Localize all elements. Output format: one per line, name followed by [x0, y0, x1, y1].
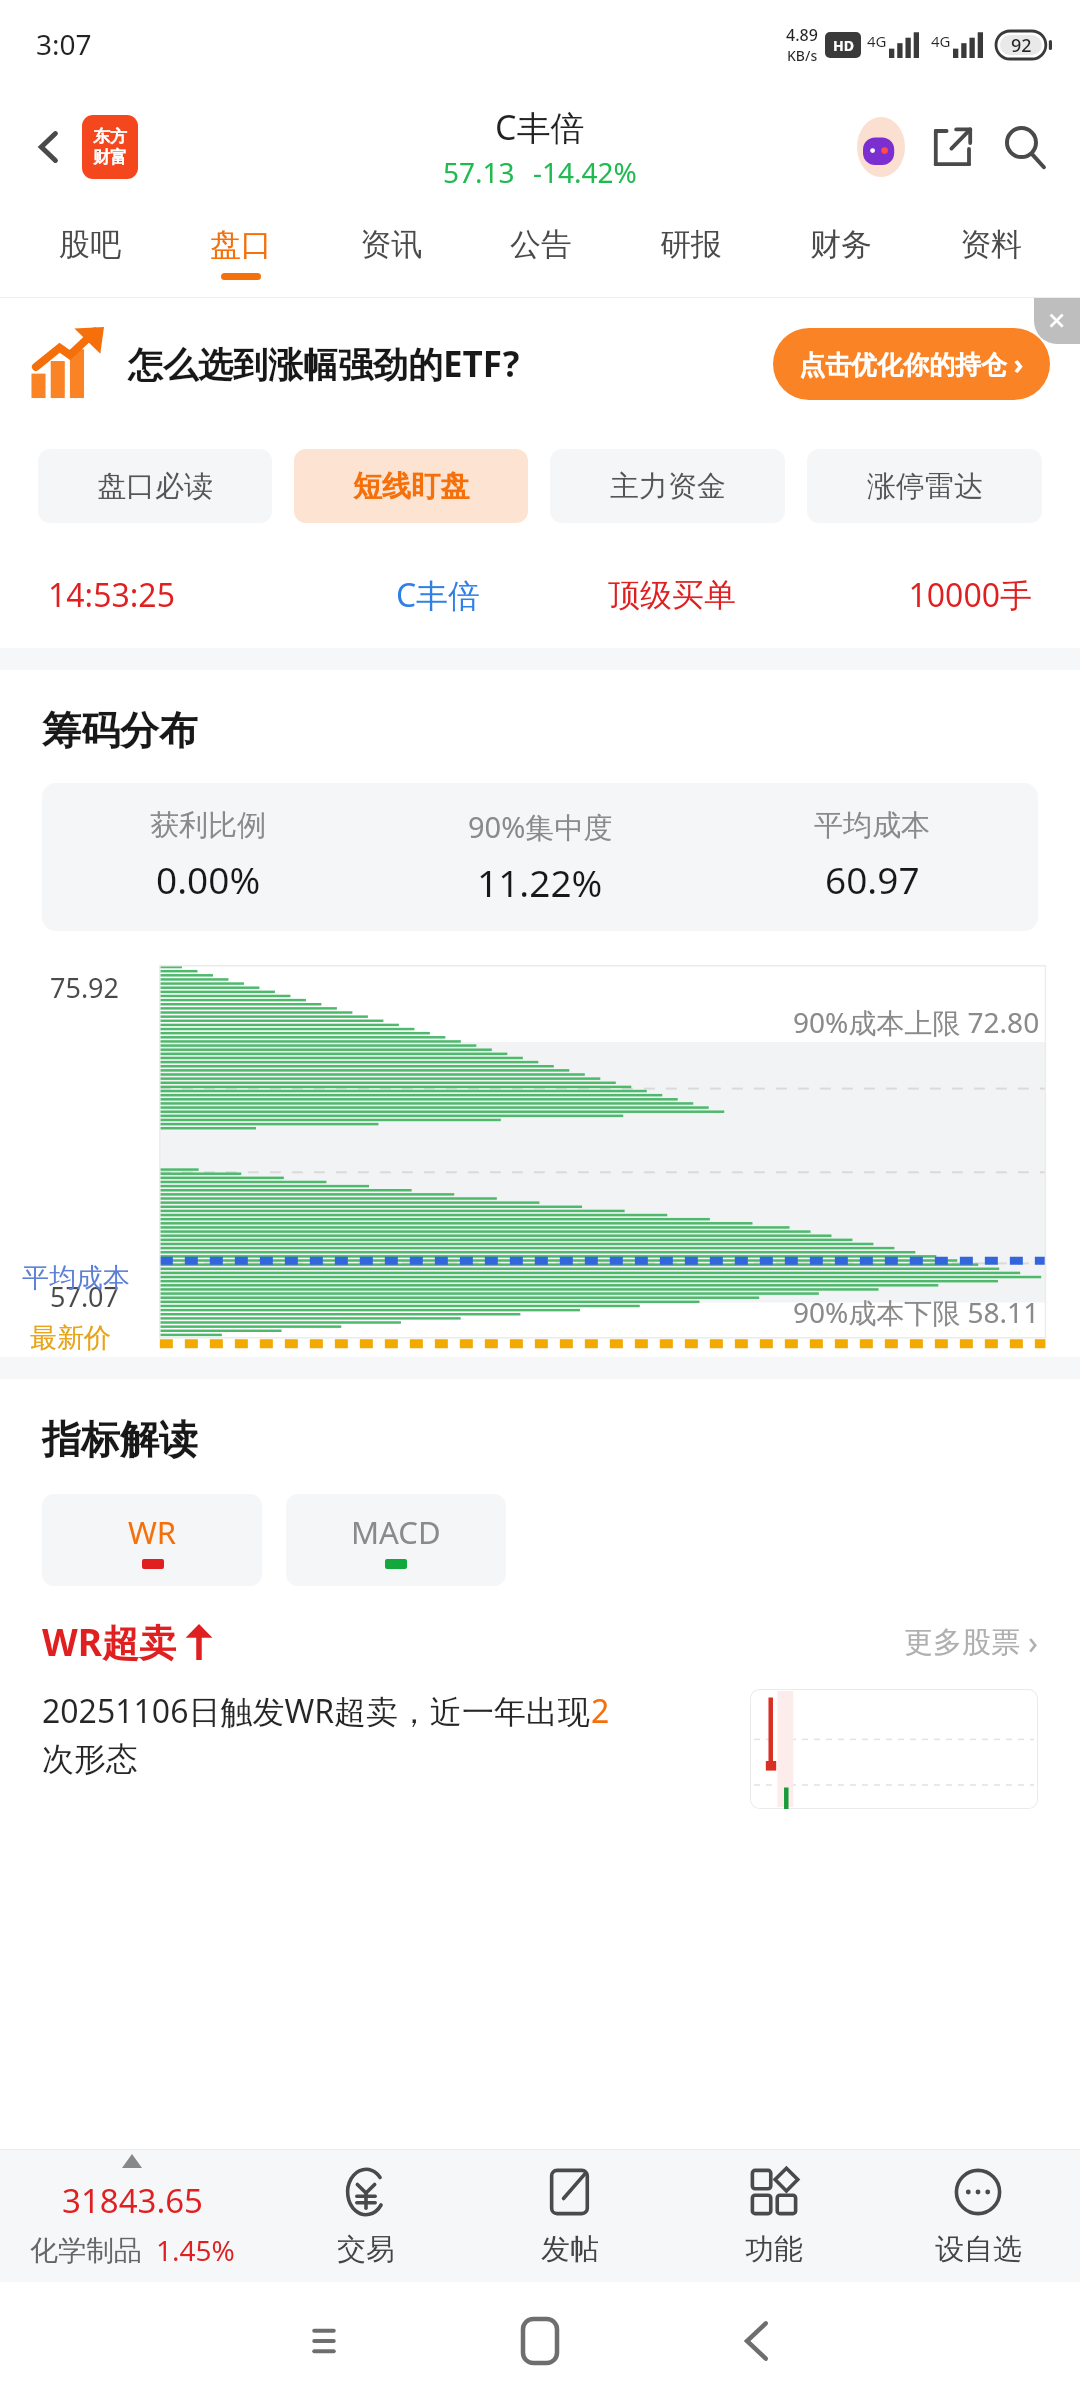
- staticText: 4.89: [786, 24, 818, 46]
- button[interactable]: 盘口必读: [38, 449, 272, 523]
- staticText: 资料: [960, 225, 1022, 264]
- staticText: 功能: [745, 2231, 803, 2268]
- staticText: C丰倍: [495, 104, 585, 150]
- staticText: 57.07: [50, 1278, 120, 1315]
- staticText: 11.22%: [477, 857, 603, 907]
- button[interactable]: 主力资金: [550, 449, 785, 523]
- button[interactable]: 东方: [82, 115, 138, 179]
- staticText: 最新价: [30, 1321, 111, 1355]
- staticText: 盘口必读: [97, 468, 213, 505]
- staticText: -14.42%: [533, 153, 637, 191]
- button[interactable]: 功能: [672, 2150, 876, 2282]
- button[interactable]: 资讯: [316, 206, 466, 298]
- staticText: 化学制品: [30, 2233, 142, 2268]
- staticText: 20251106日触发WR超卖，近一年出现: [42, 1689, 591, 1733]
- button[interactable]: 盘口: [165, 206, 316, 298]
- button[interactable]: 分享: [920, 114, 986, 180]
- staticText: 57.13: [443, 153, 515, 191]
- staticText: 92: [1011, 33, 1032, 58]
- staticText: 点击优化你的持仓 ›: [799, 346, 1024, 382]
- button[interactable]: 31843.65: [0, 2150, 264, 2282]
- staticText: 筹码分布: [42, 706, 198, 755]
- button[interactable]: 点击优化你的持仓 ›: [773, 328, 1050, 400]
- staticText: 研报: [660, 225, 722, 264]
- staticText: 3:07: [36, 25, 92, 63]
- button[interactable]: 返回: [18, 116, 80, 178]
- button[interactable]: 怎么选到涨幅强劲的ETF?: [30, 298, 1050, 430]
- staticText: 10000手: [792, 573, 1032, 617]
- staticText: 指标解读: [42, 1415, 198, 1464]
- button[interactable]: 搜索: [992, 114, 1058, 180]
- staticText: 1.45%: [156, 2231, 235, 2269]
- staticText: 发帖: [541, 2231, 599, 2268]
- button[interactable]: 资料: [916, 206, 1066, 298]
- button[interactable]: 设自选: [876, 2150, 1080, 2282]
- staticText: 获利比例: [150, 807, 266, 844]
- staticText: 2: [591, 1689, 610, 1733]
- staticText: ›: [1028, 1620, 1038, 1664]
- button[interactable]: 14:53:25: [48, 542, 1032, 648]
- staticText: 90%成本下限 58.11: [793, 1293, 1040, 1331]
- staticText: ✕: [1047, 308, 1067, 335]
- staticText: 盘口: [210, 225, 272, 264]
- staticText: 31843.65: [62, 2178, 203, 2223]
- button[interactable]: 财务: [766, 206, 916, 298]
- staticText: 60.97: [825, 854, 920, 904]
- button[interactable]: 发帖: [468, 2150, 672, 2282]
- staticText: 东方: [93, 126, 127, 147]
- staticText: 公告: [510, 225, 572, 264]
- staticText: 90%成本上限 72.80: [793, 1003, 1040, 1041]
- staticText: 怎么选到涨幅强劲的ETF?: [128, 340, 520, 388]
- staticText: C丰倍: [324, 573, 552, 617]
- button[interactable]: 返回: [648, 2282, 864, 2400]
- button[interactable]: 交易: [264, 2150, 468, 2282]
- staticText: 财富: [93, 147, 127, 168]
- staticText: 4G: [931, 31, 951, 51]
- button[interactable]: 公告: [466, 206, 616, 298]
- staticText: 90%集中度: [468, 807, 613, 847]
- staticText: MACD: [351, 1511, 441, 1553]
- button[interactable]: 主屏幕: [432, 2282, 648, 2400]
- button[interactable]: 关闭广告: [1034, 298, 1080, 344]
- button[interactable]: 股吧: [14, 206, 165, 298]
- button[interactable]: 涨停雷达: [807, 449, 1042, 523]
- staticText: 短线盯盘: [353, 468, 469, 505]
- button[interactable]: 短线盯盘: [294, 449, 528, 523]
- staticText: 4G: [867, 31, 887, 51]
- staticText: 主力资金: [610, 468, 726, 505]
- staticText: 涨停雷达: [867, 468, 983, 505]
- staticText: 资讯: [360, 225, 422, 264]
- button[interactable]: WR: [42, 1494, 262, 1586]
- button[interactable]: 更多股票: [904, 1620, 1038, 1664]
- staticText: WR: [128, 1511, 177, 1553]
- staticText: 75.92: [50, 969, 120, 1006]
- staticText: 顶级买单: [552, 575, 792, 615]
- staticText: KB/s: [787, 46, 818, 65]
- staticText: 平均成本: [22, 1261, 130, 1295]
- button[interactable]: 智能助手: [848, 114, 914, 180]
- staticText: 0.00%: [156, 854, 261, 904]
- staticText: 财务: [810, 225, 872, 264]
- staticText: 股吧: [59, 225, 121, 264]
- button[interactable]: MACD: [286, 1494, 506, 1586]
- staticText: HD: [833, 36, 854, 55]
- staticText: 14:53:25: [48, 573, 324, 617]
- staticText: 交易: [337, 2231, 395, 2268]
- button[interactable]: 研报: [616, 206, 766, 298]
- staticText: 更多股票: [904, 1624, 1020, 1661]
- button[interactable]: 最近任务: [216, 2282, 432, 2400]
- staticText: 次形态: [42, 1739, 138, 1779]
- staticText: 平均成本: [814, 807, 930, 844]
- staticText: 设自选: [935, 2231, 1022, 2268]
- staticText: WR超卖: [42, 1616, 177, 1667]
